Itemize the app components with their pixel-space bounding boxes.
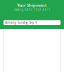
staticText: Arriving Tuesday, Sep 9 <box>5 21 37 24</box>
staticText: Your Shipment <box>17 3 47 8</box>
staticText: Tracking 8492 1028 4471 <box>13 8 50 11</box>
